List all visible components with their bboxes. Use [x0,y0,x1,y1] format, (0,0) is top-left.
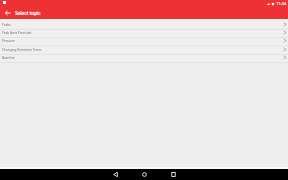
button[interactable]: Recent apps [159,169,188,180]
button[interactable]: Navigate up [0,7,14,19]
button[interactable]: Baseline [0,54,288,62]
button[interactable]: Peaks [0,21,288,29]
button[interactable]: Changing Retention Times [0,46,288,54]
staticText: 11:24 [276,1,287,6]
staticText: Select topic [15,10,41,16]
button[interactable]: Peak Area Precision [0,29,288,37]
staticText: Peaks [2,23,282,27]
button[interactable]: Home [130,169,159,180]
button[interactable]: Pressure [0,37,288,45]
button[interactable]: Back [101,169,130,180]
staticText: Pressure [2,39,282,43]
staticText: Peak Area Precision [2,31,282,35]
staticText: Baseline [2,56,282,60]
staticText: Changing Retention Times [2,48,282,52]
